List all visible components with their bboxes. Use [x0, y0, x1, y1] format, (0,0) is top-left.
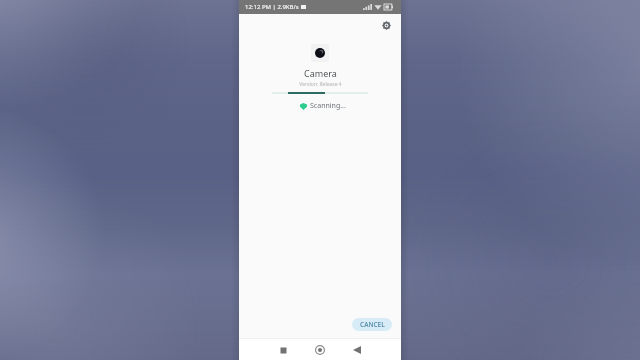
button[interactable]: CANCEL [352, 318, 392, 331]
button[interactable]: Back [349, 342, 365, 358]
staticText: 12:12 PM | 2.9KB/s [245, 3, 299, 11]
button[interactable]: Recents [275, 342, 291, 358]
staticText: Scanning... [310, 101, 346, 111]
button[interactable]: Home [312, 342, 328, 358]
staticText: Camera [304, 67, 337, 79]
button[interactable]: Settings [378, 17, 394, 33]
staticText: CANCEL [360, 320, 385, 329]
staticText: Version: Release 4 [299, 81, 342, 88]
